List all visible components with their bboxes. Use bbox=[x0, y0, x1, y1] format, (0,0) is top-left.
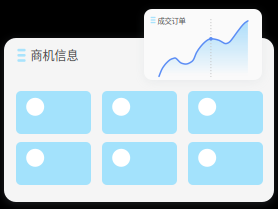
button[interactable]: Opportunity card bbox=[102, 91, 177, 134]
button[interactable]: Opportunity card bbox=[16, 91, 91, 134]
button[interactable]: Opportunity card bbox=[16, 142, 91, 185]
staticText: 商机信息 bbox=[30, 46, 78, 64]
button[interactable]: Opportunity card bbox=[188, 91, 263, 134]
button[interactable]: Opportunity card bbox=[188, 142, 263, 185]
button[interactable]: Opportunity card bbox=[102, 142, 177, 185]
staticText: 成交订单 bbox=[158, 15, 186, 26]
